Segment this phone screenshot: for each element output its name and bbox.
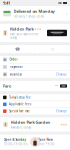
staticText: Delivered on Monday: [13, 8, 54, 14]
staticText: ★: [63, 123, 65, 126]
button[interactable]: Open Now: [36, 136, 68, 147]
button[interactable]: ▭: [0, 63, 70, 70]
staticText: ★: [60, 123, 62, 126]
staticText: ◌: [51, 45, 54, 53]
staticText: •••: [55, 84, 58, 88]
button[interactable]: Applicable fees: [0, 101, 70, 108]
button[interactable]: ▣: [0, 71, 70, 78]
staticText: ★: [34, 27, 36, 30]
button[interactable]: Hidden Park: [3, 26, 45, 40]
button[interactable]: ▦: [0, 56, 70, 63]
staticText: ▭: [3, 65, 6, 68]
staticText: ★: [39, 27, 41, 30]
button[interactable]: Hidden Park Garden: [0, 117, 70, 132]
staticText: ★: [65, 123, 67, 126]
staticText: Change: [56, 109, 67, 113]
staticText: Change: [56, 73, 67, 76]
button[interactable]: Special fare rate: [0, 108, 70, 114]
staticText: Open & Sunday: [3, 138, 25, 141]
staticText: Applicable fees: [9, 102, 31, 106]
staticText: Special fare rate: [9, 109, 30, 113]
staticText: Fare: [3, 83, 11, 89]
staticText: Hidden Park Garden: [10, 120, 50, 125]
staticText: Delivery 7 shop items: [13, 15, 43, 18]
staticText: Today's stop fee: [9, 96, 31, 99]
button[interactable]: [47, 30, 67, 36]
staticText: Rate your experience today: [9, 32, 38, 40]
staticText: Open Now: [37, 138, 52, 141]
staticText: Available today: [10, 126, 30, 129]
button[interactable]: Delivered on Monday: [0, 6, 70, 21]
staticText: ☎: [15, 47, 20, 51]
button[interactable]: Today's stop fee: [0, 94, 70, 101]
staticText: ▦: [3, 58, 6, 61]
staticText: Payment: [9, 65, 22, 69]
staticText: Hidden Park: [9, 26, 33, 32]
staticText: ▣: [3, 73, 6, 76]
staticText: ›: [66, 11, 67, 16]
staticText: Business: [9, 73, 21, 76]
button[interactable]: Open & Sunday: [2, 136, 34, 147]
staticText: 10:00-19:00 hrs: [3, 142, 27, 146]
staticText: ★: [37, 27, 39, 30]
staticText: 9:41: [3, 0, 10, 6]
staticText: Until 19:00: [37, 142, 54, 146]
button[interactable]: ☎: [0, 45, 35, 53]
staticText: Order: [9, 58, 17, 61]
